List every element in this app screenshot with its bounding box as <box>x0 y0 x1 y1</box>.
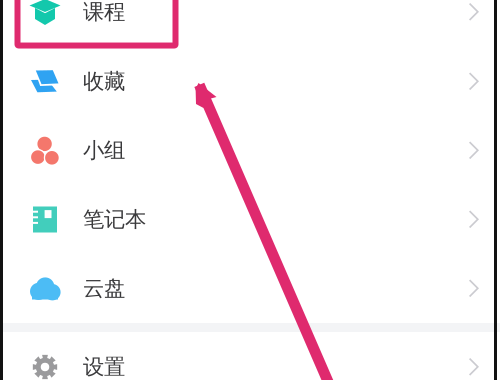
staticText: 设置 <box>83 354 125 380</box>
button[interactable]: 收藏 <box>0 47 500 116</box>
button[interactable]: 云盘 <box>0 254 500 323</box>
staticText: 课程 <box>83 0 125 25</box>
staticText: 云盘 <box>83 275 125 302</box>
button[interactable]: 设置 <box>0 332 500 380</box>
button[interactable]: 笔记本 <box>0 185 500 254</box>
button[interactable]: 小组 <box>0 116 500 185</box>
staticText: 收藏 <box>83 68 125 95</box>
button[interactable]: 课程 <box>0 0 500 47</box>
staticText: 笔记本 <box>83 206 146 233</box>
staticText: 小组 <box>83 137 125 164</box>
